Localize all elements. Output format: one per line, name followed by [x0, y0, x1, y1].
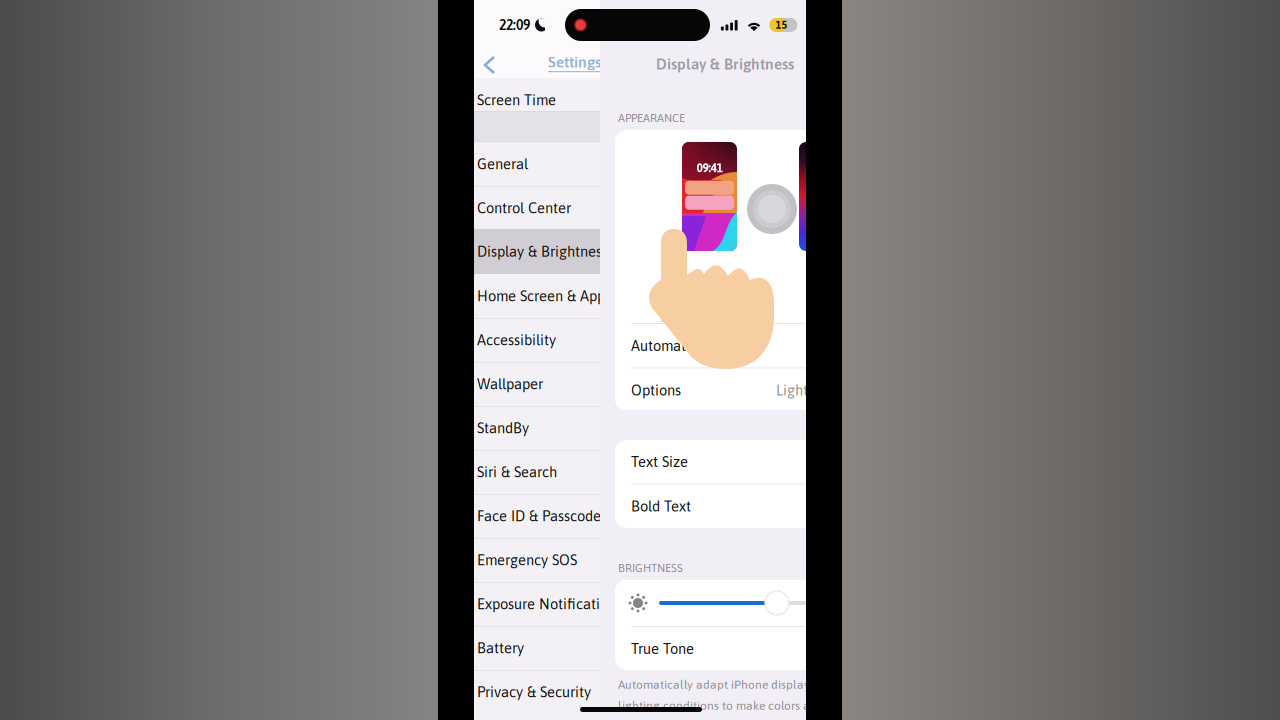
staticText: 15	[775, 19, 787, 31]
staticText: Screen Time	[477, 92, 556, 108]
staticText: Emergency SOS	[477, 552, 577, 568]
staticText: Battery	[477, 640, 524, 656]
staticText: Automatic	[631, 337, 697, 354]
staticText: Control Center	[477, 200, 571, 216]
staticText: Text Size	[631, 453, 688, 470]
button[interactable]: Automatic	[615, 324, 915, 367]
button[interactable]: Wallpaper	[474, 362, 600, 406]
staticText: Accessibility	[477, 332, 556, 348]
button[interactable]: General	[474, 142, 600, 186]
button[interactable]: Options	[615, 368, 915, 412]
staticText: Options	[631, 382, 681, 399]
button[interactable]: Exposure Notifications	[474, 582, 600, 626]
staticText: Privacy & Security	[477, 684, 591, 700]
staticText: Bold Text	[631, 498, 691, 515]
button[interactable]: Siri & Search	[474, 450, 600, 494]
button[interactable]: Back	[478, 51, 508, 79]
button[interactable]: Home Screen & App Library	[474, 274, 600, 318]
staticText: 09:41	[696, 161, 722, 175]
button[interactable]: Text Size	[615, 440, 915, 484]
staticText: APPEARANCE	[618, 111, 685, 124]
staticText: Automatically adapt iPhone display and	[618, 678, 834, 691]
staticText: StandBy	[477, 420, 529, 436]
button[interactable]: Emergency SOS	[474, 538, 600, 582]
staticText: Display & Brightness	[477, 243, 608, 260]
button[interactable]: Bold Text	[615, 484, 915, 528]
button[interactable]: Screen Time	[474, 78, 600, 122]
staticText: Siri & Search	[477, 464, 557, 480]
staticText: Face ID & Passcode	[477, 508, 601, 524]
button[interactable]: Privacy & Security	[474, 670, 600, 714]
staticText: General	[477, 156, 528, 172]
button[interactable]: Accessibility	[474, 318, 600, 362]
staticText: Wallpaper	[477, 376, 543, 392]
button[interactable]: Face ID & Passcode	[474, 494, 600, 538]
staticText: Home Screen & App Library	[477, 288, 653, 304]
staticText: Settings	[548, 53, 601, 71]
button[interactable]: StandBy	[474, 406, 600, 450]
button[interactable]: True Tone	[615, 627, 915, 670]
button[interactable]: Control Center	[474, 186, 600, 230]
staticText: Light	[776, 382, 808, 399]
button[interactable]: Display & Brightness	[474, 229, 600, 274]
staticText: Display & Brightness	[656, 55, 794, 73]
staticText: 22:09	[499, 17, 530, 33]
button[interactable]: Battery	[474, 626, 600, 670]
staticText: lighting conditions to make colors appea…	[618, 699, 841, 712]
staticText: BRIGHTNESS	[618, 561, 683, 574]
staticText: True Tone	[631, 640, 694, 657]
staticText: Exposure Notifications	[477, 596, 622, 612]
